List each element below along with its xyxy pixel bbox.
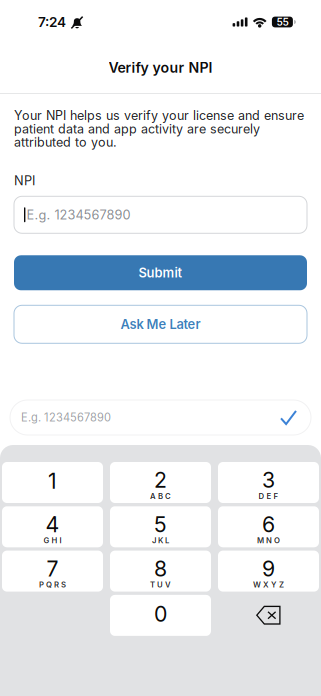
- button[interactable]: 3: [218, 462, 319, 503]
- button[interactable]: 6: [218, 506, 319, 547]
- button[interactable]: 8: [110, 551, 211, 592]
- button[interactable]: 4: [2, 506, 103, 547]
- button[interactable]: 1: [2, 462, 103, 503]
- staticText: G H I: [43, 536, 61, 545]
- staticText: Your NPI helps us verify your license an…: [14, 108, 304, 150]
- staticText: E.g. 1234567890: [26, 207, 130, 222]
- button[interactable]: 7: [2, 551, 103, 592]
- staticText: P Q R S: [39, 580, 66, 589]
- staticText: Verify your NPI: [108, 59, 212, 76]
- staticText: 7:24: [38, 14, 66, 30]
- staticText: E.g. 1234567890: [21, 411, 111, 424]
- button[interactable]: Ask Me Later: [14, 305, 307, 343]
- staticText: 8: [154, 556, 167, 582]
- staticText: T U V: [150, 580, 171, 589]
- button[interactable]: Submit: [14, 255, 307, 290]
- staticText: Submit: [138, 265, 182, 281]
- button[interactable]: E.g. 1234567890: [10, 400, 311, 435]
- button[interactable]: Delete: [218, 595, 319, 636]
- staticText: W X Y Z: [253, 580, 284, 589]
- staticText: 0: [154, 601, 167, 627]
- staticText: 3: [262, 467, 275, 493]
- staticText: M N O: [257, 536, 280, 545]
- staticText: NPI: [14, 173, 35, 188]
- staticText: 55: [276, 16, 288, 28]
- staticText: 4: [45, 511, 59, 537]
- staticText: Ask Me Later: [120, 316, 200, 332]
- staticText: 6: [262, 511, 275, 537]
- staticText: J K L: [152, 536, 169, 545]
- button[interactable]: 5: [110, 506, 211, 547]
- staticText: 2: [154, 467, 167, 493]
- button[interactable]: 0: [110, 595, 211, 636]
- staticText: 1: [48, 468, 57, 494]
- staticText: D E F: [258, 491, 278, 501]
- button[interactable]: 2: [110, 462, 211, 503]
- staticText: 9: [262, 556, 275, 582]
- button[interactable]: 9: [218, 551, 319, 592]
- staticText: A B C: [150, 491, 171, 501]
- staticText: 7: [46, 556, 58, 582]
- staticText: 5: [154, 511, 167, 537]
